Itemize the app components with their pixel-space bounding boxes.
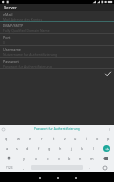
staticText: i — [86, 136, 87, 141]
staticText: n — [79, 156, 82, 161]
button[interactable]: , — [18, 163, 30, 172]
button[interactable]: e — [24, 133, 36, 143]
staticText: IMAP/SMTP — [3, 23, 24, 28]
button[interactable]: h — [55, 143, 66, 153]
button[interactable]: eMail — [0, 11, 114, 22]
button[interactable]: Backspace — [97, 153, 114, 163]
staticText: eMail — [3, 12, 13, 17]
staticText: t — [53, 136, 55, 141]
button[interactable]: w — [12, 133, 24, 143]
button[interactable]: ?123 — [0, 163, 18, 172]
staticText: Mail-Adresse des Kontos — [3, 17, 43, 22]
staticText: z — [64, 136, 66, 141]
staticText: . — [89, 165, 91, 170]
button[interactable]: o — [92, 133, 103, 143]
staticText: m — [90, 156, 94, 161]
button[interactable]: z — [59, 133, 70, 143]
staticText: r — [41, 136, 43, 141]
staticText: c — [47, 156, 49, 161]
button[interactable]: Shift — [0, 153, 18, 163]
button[interactable]: k — [77, 143, 88, 153]
button[interactable]: Home — [53, 173, 62, 182]
staticText: Passwort fur Authentifizierung — [3, 64, 52, 69]
button[interactable]: y — [18, 153, 30, 163]
button[interactable]: v — [53, 153, 64, 163]
staticText: f — [38, 146, 40, 151]
staticText: Fully Qualified Domain Name — [3, 28, 50, 33]
staticText: 0 — [3, 40, 5, 45]
button[interactable]: Done — [104, 70, 112, 78]
button[interactable]: l — [88, 143, 99, 153]
staticText: v — [58, 156, 60, 161]
button[interactable]: f — [33, 143, 44, 153]
staticText: o — [96, 136, 99, 141]
staticText: e — [29, 136, 32, 141]
staticText: u — [74, 136, 77, 141]
staticText: l — [93, 146, 94, 151]
button[interactable]: a — [2, 143, 12, 153]
staticText: Passwort fur Authentifizierung — [34, 127, 80, 131]
button[interactable]: s — [12, 143, 22, 153]
staticText: w — [17, 136, 20, 141]
button[interactable]: m — [86, 153, 97, 163]
staticText: Nutzername fur Authentifizierung — [3, 52, 58, 57]
staticText: d — [26, 146, 29, 151]
staticText: q — [5, 136, 8, 141]
staticText: Server — [4, 5, 17, 11]
staticText: b — [68, 156, 71, 161]
button[interactable]: d — [22, 143, 33, 153]
staticText: y — [23, 156, 25, 161]
button[interactable]: b — [64, 153, 75, 163]
staticText: h — [59, 146, 62, 151]
staticText: x — [35, 156, 38, 161]
button[interactable]: i — [81, 133, 92, 143]
button[interactable]: c — [42, 153, 53, 163]
button[interactable]: p — [103, 133, 114, 143]
button[interactable]: IMAP/SMTP — [0, 22, 114, 34]
button[interactable]: Server — [0, 4, 114, 11]
button[interactable]: g — [44, 143, 55, 153]
button[interactable]: x — [30, 153, 42, 163]
staticText: s — [16, 146, 18, 151]
button[interactable]: n — [75, 153, 86, 163]
button[interactable]: Back — [35, 173, 44, 182]
button[interactable]: q — [0, 133, 12, 143]
staticText: g — [48, 146, 51, 151]
staticText: Username — [3, 47, 21, 52]
button[interactable]: Passwort — [0, 58, 114, 69]
button[interactable]: Recents — [71, 173, 80, 182]
staticText: a — [6, 146, 9, 151]
button[interactable]: Emoji — [96, 163, 114, 172]
button[interactable]: Username — [0, 46, 114, 58]
staticText: Port — [3, 35, 11, 40]
button[interactable]: t — [48, 133, 59, 143]
button[interactable]: j — [66, 143, 77, 153]
staticText: p — [107, 136, 110, 141]
staticText: ?123 — [6, 166, 13, 170]
button[interactable]: Port — [0, 34, 114, 46]
button[interactable]: u — [70, 133, 81, 143]
staticText: j — [71, 146, 72, 151]
button[interactable]: Enter — [103, 145, 110, 152]
staticText: , — [23, 165, 25, 170]
staticText: k — [81, 146, 84, 151]
staticText: Passwort — [3, 59, 19, 64]
button[interactable]: r — [36, 133, 48, 143]
